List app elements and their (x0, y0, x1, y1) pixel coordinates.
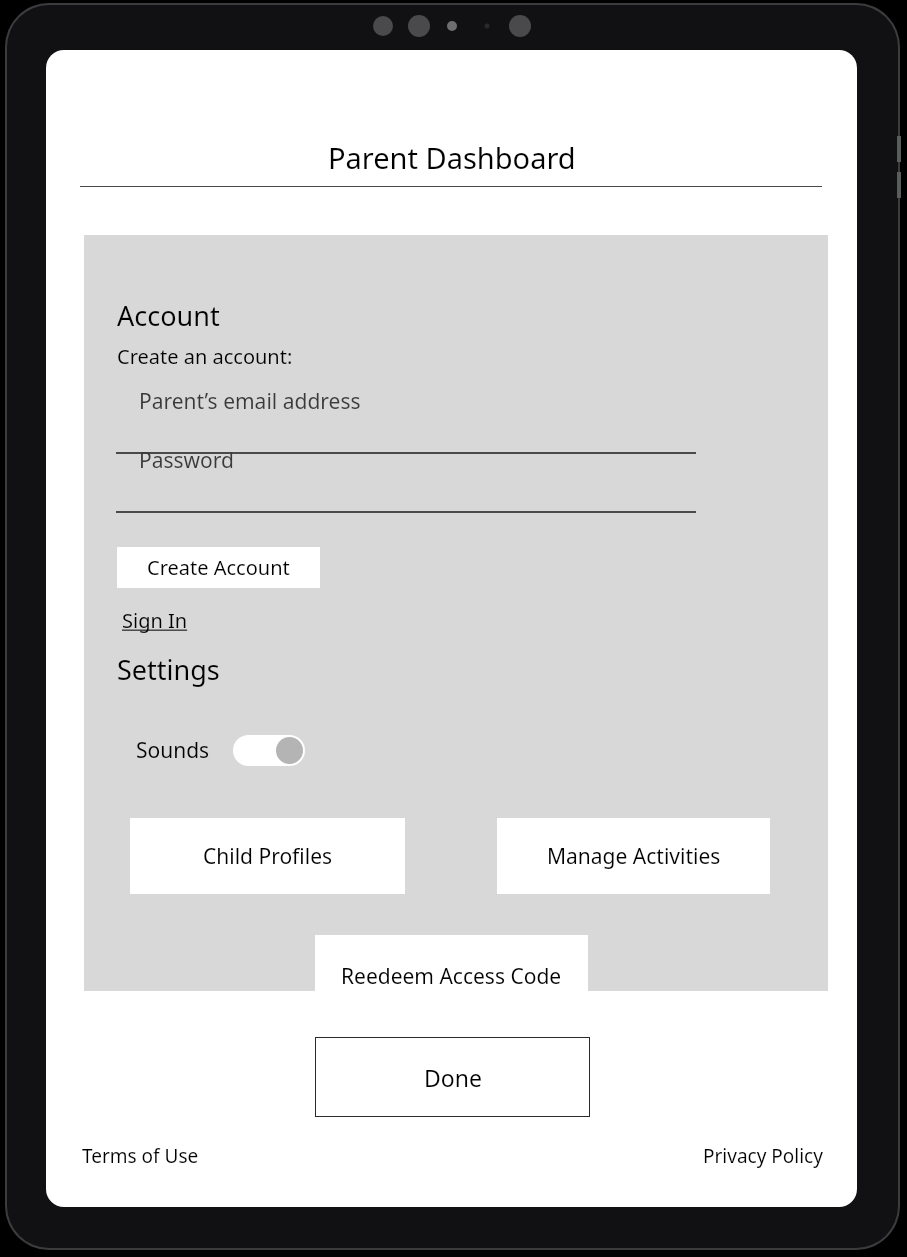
staticText: Parent’s email address (139, 387, 361, 416)
button[interactable]: Sign In (122, 607, 188, 634)
button[interactable]: Terms of Use (82, 1143, 199, 1169)
button[interactable]: Manage Activities (497, 818, 770, 894)
staticText: Create an account: (117, 343, 293, 370)
staticText: Settings (117, 651, 220, 688)
staticText: Privacy Policy (703, 1143, 823, 1169)
staticText: Done (424, 1062, 482, 1093)
staticText: Child Profiles (203, 842, 333, 871)
button[interactable]: Reedeem Access Code (315, 935, 588, 1018)
other: Sounds toggle (233, 735, 305, 766)
staticText: Create Account (147, 554, 290, 581)
staticText: Terms of Use (82, 1143, 199, 1169)
staticText: Account (117, 297, 220, 334)
staticText: Sign In (122, 607, 188, 634)
staticText: Sounds (136, 736, 210, 765)
staticText: Password (139, 446, 234, 475)
staticText: Reedeem Access Code (341, 962, 562, 991)
button[interactable]: Done (315, 1037, 590, 1117)
button[interactable]: Privacy Policy (703, 1143, 823, 1169)
staticText: Manage Activities (547, 842, 721, 871)
button[interactable]: Sounds (136, 735, 305, 766)
button[interactable]: Child Profiles (130, 818, 405, 894)
button[interactable]: Create Account (117, 547, 320, 588)
staticText: Parent Dashboard (328, 138, 576, 177)
